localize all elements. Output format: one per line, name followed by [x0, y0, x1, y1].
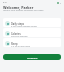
staticText: Daily steps: [11, 22, 24, 25]
staticText: Calories: [11, 32, 21, 35]
staticText: 9:41: [3, 1, 7, 4]
staticText: 420 kcal burned: [11, 35, 28, 37]
button[interactable]: Sleep: [3, 38, 61, 47]
button[interactable]: Daily steps: [3, 18, 61, 27]
staticText: Here is your activity summary for today.: [3, 9, 48, 12]
button[interactable]: Continue: [3, 54, 61, 60]
staticText: Sleep: [11, 42, 18, 45]
staticText: Continue: [27, 56, 38, 59]
staticText: 8,420 steps walked today: [11, 25, 37, 27]
staticText: 7 h 20 m last night: [11, 45, 31, 47]
button[interactable]: Calories: [3, 28, 61, 37]
staticText: Welcome, Parker: [3, 5, 34, 10]
